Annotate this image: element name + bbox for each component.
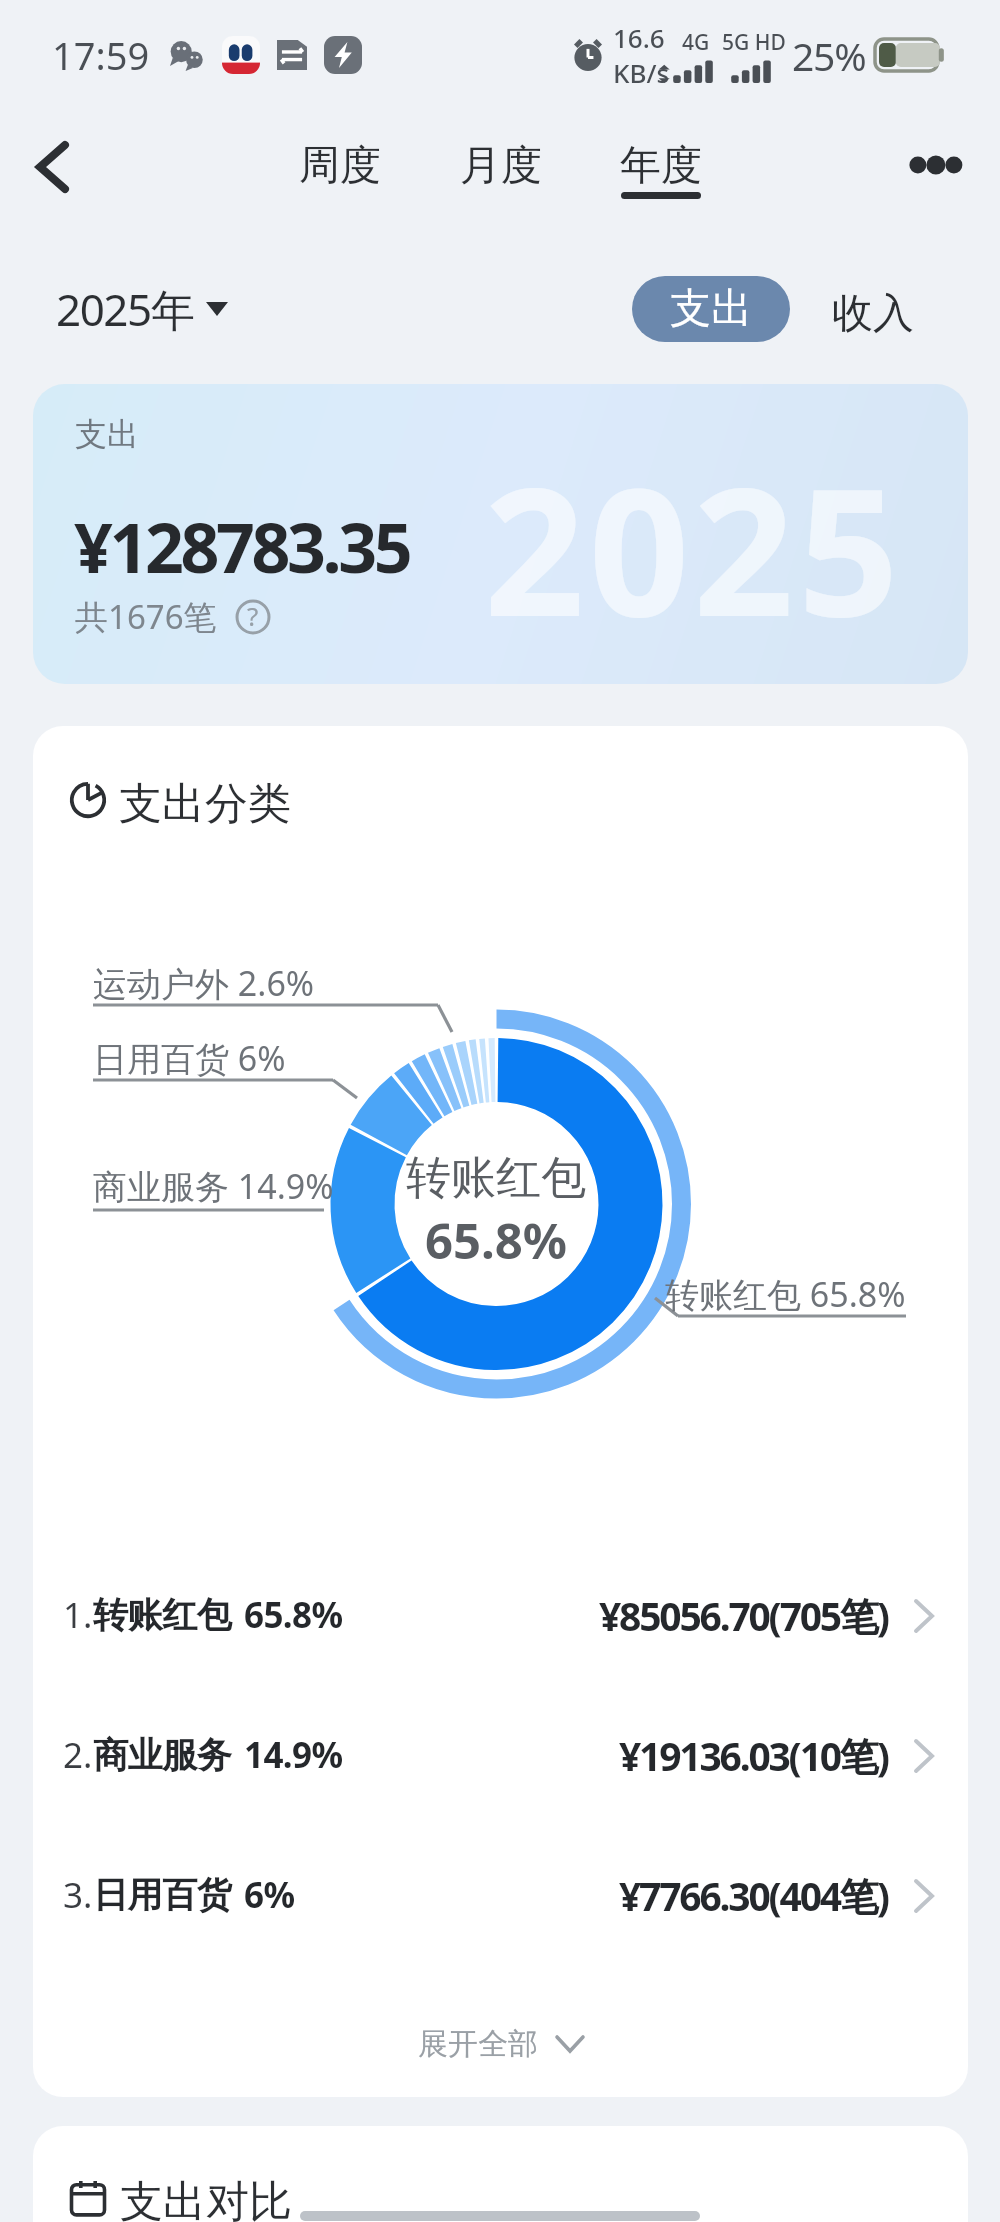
staticText: 转账红包	[93, 1593, 232, 1637]
staticText: 运动户外 2.6%	[93, 960, 315, 1006]
button[interactable]: 3.	[33, 1850, 968, 1940]
staticText: 65.8%	[425, 1207, 568, 1274]
staticText: 5G HD	[722, 28, 786, 57]
staticText: 转账红包 65.8%	[665, 1271, 906, 1317]
button[interactable]: Back	[17, 132, 87, 202]
staticText: 14.9%	[244, 1731, 343, 1779]
staticText: 月度	[460, 140, 542, 192]
staticText: ¥85056.70(705笔)	[599, 1589, 888, 1642]
staticText: 日用百货	[93, 1873, 232, 1917]
button[interactable]: More options	[890, 132, 980, 198]
staticText: 商业服务	[93, 1733, 232, 1777]
staticText: 共1676笔	[75, 594, 217, 639]
button[interactable]: 支出	[632, 276, 790, 342]
button[interactable]: 收入	[822, 278, 924, 350]
staticText: 商业服务 14.9%	[93, 1163, 334, 1209]
staticText: ¥128783.35	[74, 500, 410, 593]
staticText: 1.	[63, 1591, 93, 1639]
staticText: 17:59	[52, 29, 150, 81]
button[interactable]: 2025年	[48, 273, 236, 345]
staticText: 展开全部	[418, 2025, 538, 2063]
button[interactable]: 2.	[33, 1710, 968, 1800]
staticText: 支出	[75, 414, 139, 454]
button[interactable]: 年度	[620, 140, 702, 199]
button[interactable]: 2025	[33, 384, 968, 684]
staticText: 4G	[682, 28, 710, 57]
button[interactable]: 月度	[460, 140, 542, 192]
staticText: ?	[247, 598, 259, 633]
staticText: 年度	[620, 140, 702, 192]
staticText: 支出	[670, 283, 752, 335]
staticText: 65.8%	[244, 1591, 343, 1639]
staticText: 支出分类	[119, 777, 291, 831]
staticText: 6%	[244, 1871, 295, 1919]
staticText: 日用百货 6%	[93, 1035, 286, 1081]
staticText: 2025年	[56, 279, 194, 339]
button[interactable]: 展开全部	[33, 2009, 968, 2079]
staticText: 16.6	[613, 20, 665, 55]
button[interactable]: 1.	[33, 1570, 968, 1660]
staticText: 3.	[63, 1871, 93, 1919]
staticText: 2.	[63, 1731, 93, 1779]
staticText: 支出对比	[120, 2175, 292, 2222]
staticText: ¥19136.03(10笔)	[619, 1729, 888, 1782]
staticText: 收入	[832, 288, 914, 340]
staticText: 转账红包	[406, 1150, 586, 1207]
staticText: 周度	[299, 140, 381, 192]
staticText: 25%	[792, 29, 866, 82]
staticText: 2025	[484, 428, 903, 668]
staticText: ¥7766.30(404笔)	[619, 1869, 888, 1922]
button[interactable]: 周度	[299, 140, 381, 192]
staticText: KB/s	[613, 55, 670, 90]
